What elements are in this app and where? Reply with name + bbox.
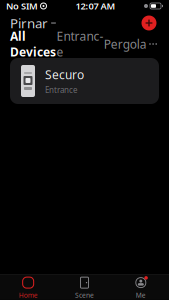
button[interactable]: More rooms [147, 37, 159, 51]
staticText: Me [136, 291, 146, 299]
button[interactable]: Pirnar [10, 10, 56, 36]
button[interactable]: Home tab [0, 274, 56, 300]
button[interactable]: Add device [139, 13, 159, 33]
button[interactable]: All Devices [10, 24, 56, 64]
button[interactable]: Entrance [56, 24, 103, 64]
staticText: Pirnar [10, 14, 48, 32]
staticText: Entrance [56, 28, 103, 60]
button[interactable]: Scene tab [56, 274, 113, 300]
staticText: No SIM [6, 0, 38, 12]
staticText: Home [19, 291, 38, 299]
button[interactable]: Securo [10, 58, 159, 104]
staticText: Pergola [104, 36, 147, 52]
staticText: All Devices [10, 28, 56, 60]
staticText: Scene [75, 291, 94, 299]
button[interactable]: Me tab [113, 274, 169, 300]
staticText: Securo [45, 67, 84, 83]
staticText: Entrance [45, 85, 78, 95]
button[interactable]: Pergola [104, 32, 147, 56]
staticText: 12:07 AM [75, 0, 115, 12]
